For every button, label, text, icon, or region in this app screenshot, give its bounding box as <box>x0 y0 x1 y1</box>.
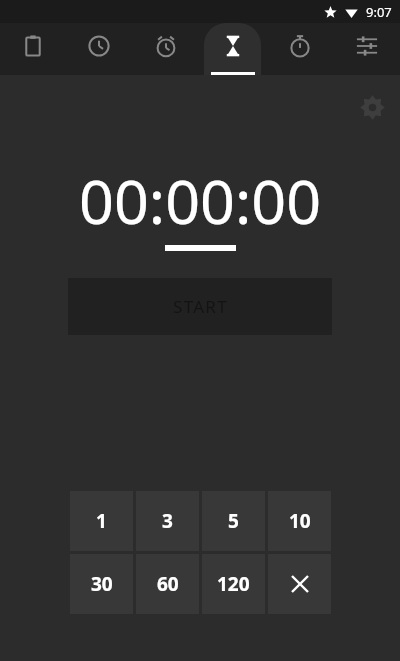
button[interactable]: 10 <box>268 491 331 551</box>
button[interactable]: Clock <box>66 23 132 75</box>
button[interactable]: Settings tab <box>333 23 400 75</box>
staticText: 60 <box>157 571 179 597</box>
staticText: 10 <box>289 508 311 534</box>
button[interactable]: 120 <box>202 554 265 614</box>
staticText: 00:00:00 <box>79 159 322 242</box>
button[interactable]: 30 <box>70 554 133 614</box>
staticText: 5 <box>228 508 239 534</box>
staticText: START <box>173 295 228 318</box>
button[interactable]: 60 <box>136 554 199 614</box>
button[interactable]: Settings <box>350 85 394 129</box>
button[interactable]: 3 <box>136 491 199 551</box>
button[interactable]: Clipboard <box>0 23 66 75</box>
button[interactable]: Timer <box>199 23 266 75</box>
button[interactable]: Clear <box>268 554 331 614</box>
staticText: 3 <box>162 508 173 534</box>
staticText: 30 <box>91 571 113 597</box>
button[interactable]: Stopwatch <box>266 23 333 75</box>
staticText: 9:07 <box>366 3 392 21</box>
button[interactable]: 5 <box>202 491 265 551</box>
staticText: 1 <box>96 508 107 534</box>
button[interactable]: 1 <box>70 491 133 551</box>
button[interactable]: Alarm <box>132 23 199 75</box>
staticText: 120 <box>217 571 250 597</box>
